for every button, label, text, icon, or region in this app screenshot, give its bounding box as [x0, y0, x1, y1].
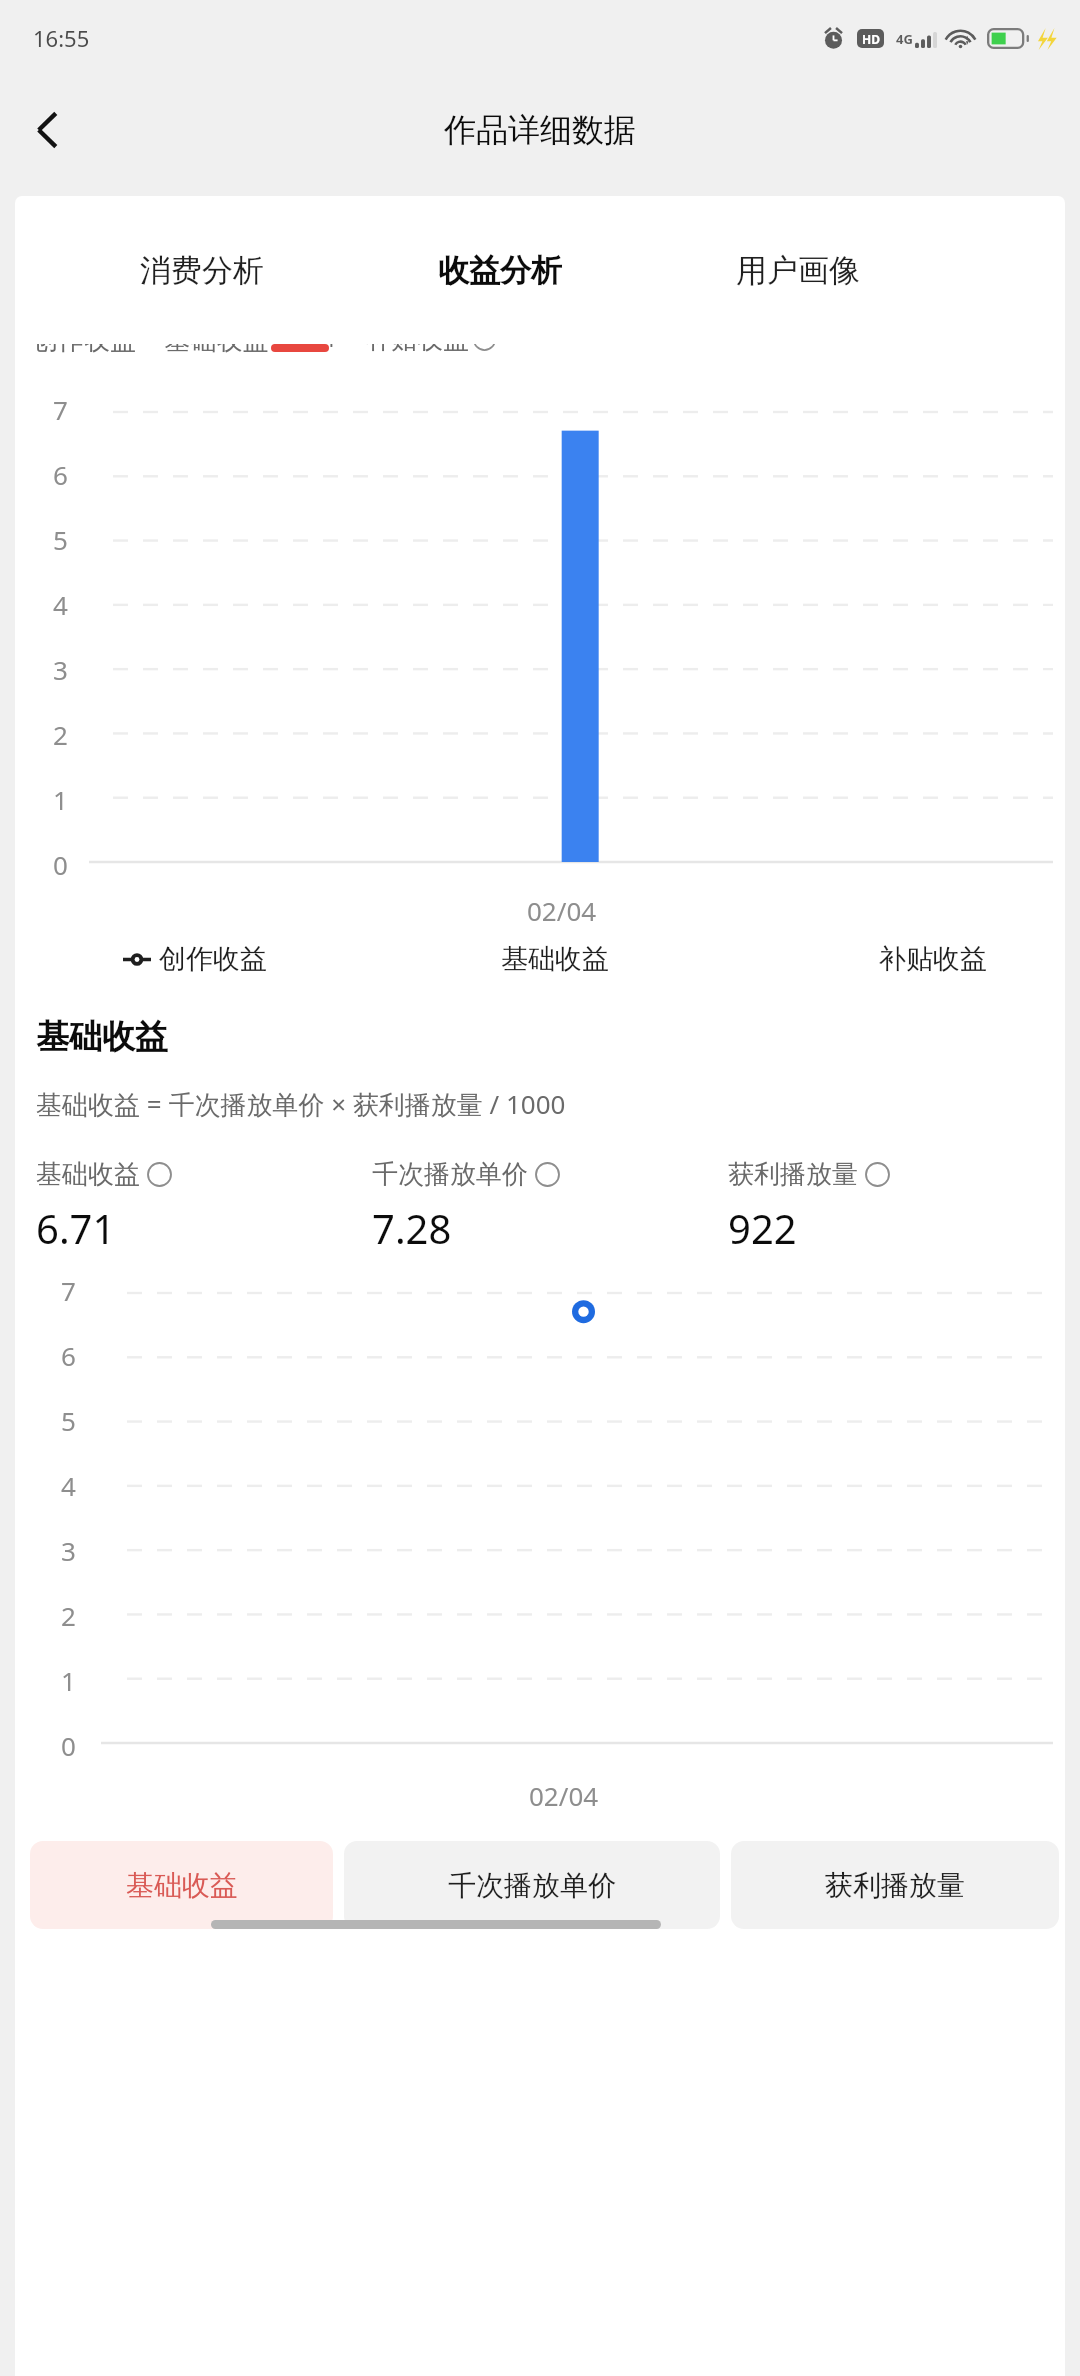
staticText: 1: [53, 782, 68, 817]
staticText: 基础收益: [501, 942, 609, 976]
staticText: 5: [53, 522, 68, 557]
staticText: 基础收益: [126, 1868, 238, 1903]
staticText: 0: [61, 1728, 76, 1763]
staticText: 16:55: [33, 23, 90, 53]
staticText: 4: [61, 1468, 76, 1503]
staticText: 补贴收益: [879, 942, 987, 976]
button[interactable]: 消费分析: [53, 196, 351, 344]
staticText: 用户画像: [736, 251, 860, 290]
staticText: 基础收益: [36, 1158, 140, 1191]
button[interactable]: 基础收益: [30, 1841, 333, 1929]
button[interactable]: 获利播放量: [728, 1158, 1044, 1255]
staticText: 2: [53, 717, 68, 752]
button[interactable]: 收益分析: [351, 196, 649, 344]
staticText: 7: [53, 392, 68, 427]
staticText: 7.28: [372, 1201, 452, 1255]
button[interactable]: Back: [12, 95, 82, 165]
staticText: 4: [53, 587, 68, 622]
staticText: 7: [61, 1273, 76, 1308]
staticText: 获利播放量: [825, 1868, 965, 1903]
button[interactable]: 获利播放量: [731, 1841, 1059, 1929]
button[interactable]: 千次播放单价: [372, 1158, 728, 1255]
button[interactable]: 用户画像: [649, 196, 947, 344]
staticText: 作品详细数据: [444, 110, 636, 150]
staticText: 千次播放单价: [448, 1868, 616, 1903]
staticText: 获利播放量: [728, 1158, 858, 1191]
staticText: 收益分析: [438, 251, 562, 290]
staticText: 创作收益: [159, 942, 267, 976]
staticText: 1: [61, 1663, 76, 1698]
staticText: 02/04: [529, 1778, 599, 1813]
staticText: 02/04: [527, 893, 597, 928]
staticText: 5: [61, 1403, 76, 1438]
button[interactable]: 补贴收益: [699, 942, 987, 976]
staticText: 创作收益 = 基础收益: [32, 344, 269, 357]
staticText: 6.71: [36, 1201, 116, 1255]
staticText: 6: [53, 457, 68, 492]
staticText: 千次播放单价: [372, 1158, 528, 1191]
staticText: 922: [728, 1201, 797, 1255]
staticText: 基础收益 = 千次播放单价 × 获利播放量 / 1000: [36, 1086, 566, 1122]
button[interactable]: 创作收益: [123, 942, 411, 976]
button[interactable]: 千次播放单价: [344, 1841, 720, 1929]
staticText: 0: [53, 847, 68, 882]
button[interactable]: 基础收益: [411, 942, 699, 976]
staticText: 4G: [896, 30, 913, 48]
button[interactable]: 基础收益: [36, 1158, 372, 1255]
staticText: 6: [61, 1338, 76, 1373]
staticText: 3: [61, 1533, 76, 1568]
staticText: 3: [53, 652, 68, 687]
staticText: HD: [862, 31, 880, 47]
staticText: 补贴收益: [365, 344, 469, 356]
staticText: 2: [61, 1598, 76, 1633]
staticText: +: [324, 344, 339, 357]
staticText: 消费分析: [140, 251, 264, 290]
staticText: 基础收益: [36, 1016, 168, 1058]
